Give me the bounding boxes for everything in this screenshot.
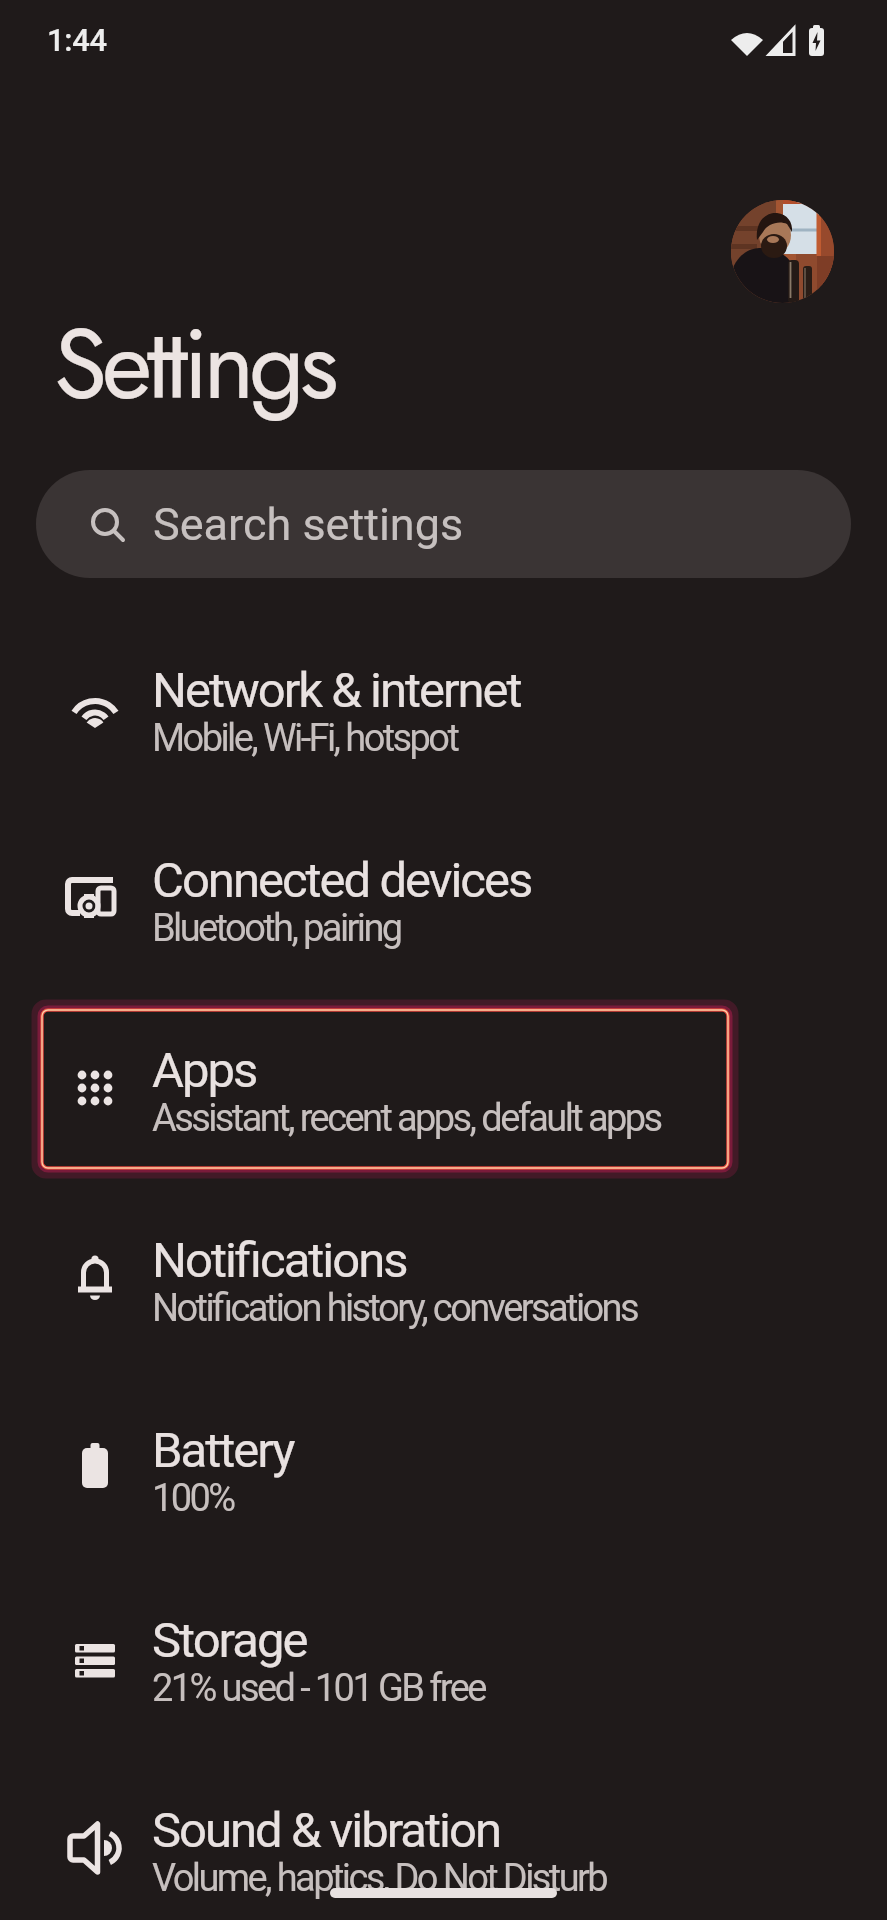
button[interactable]: Notifications [0,1183,887,1373]
staticText: Volume, haptics, Do Not Disturb [152,1856,607,1901]
staticText: Battery [152,1422,294,1479]
button[interactable]: Network & internet [0,613,887,803]
button[interactable]: Connected devices [0,803,887,993]
staticText: Assistant, recent apps, default apps [152,1096,661,1141]
staticText: Notification history, conversations [152,1286,638,1331]
staticText: Apps [152,1042,257,1099]
staticText: Mobile, Wi-Fi, hotspot [152,716,458,761]
staticText: 21% used - 101 GB free [152,1666,485,1711]
staticText: Notifications [152,1232,407,1289]
button[interactable]: Storage [0,1563,887,1753]
button[interactable]: Battery [0,1373,887,1563]
staticText: Sound & vibration [152,1802,500,1859]
staticText: Storage [152,1612,307,1669]
staticText: Connected devices [152,852,532,909]
staticText: Settings [54,294,334,434]
button[interactable]: Apps [0,993,887,1183]
staticText: Bluetooth, pairing [152,906,401,951]
staticText: 1:44 [47,22,107,58]
button[interactable]: Search settings [36,470,851,578]
staticText: Network & internet [152,662,521,719]
button[interactable]: Sound & vibration [0,1753,887,1920]
button[interactable] [731,200,834,303]
staticText: Search settings [153,498,464,551]
staticText: 100% [152,1476,234,1521]
